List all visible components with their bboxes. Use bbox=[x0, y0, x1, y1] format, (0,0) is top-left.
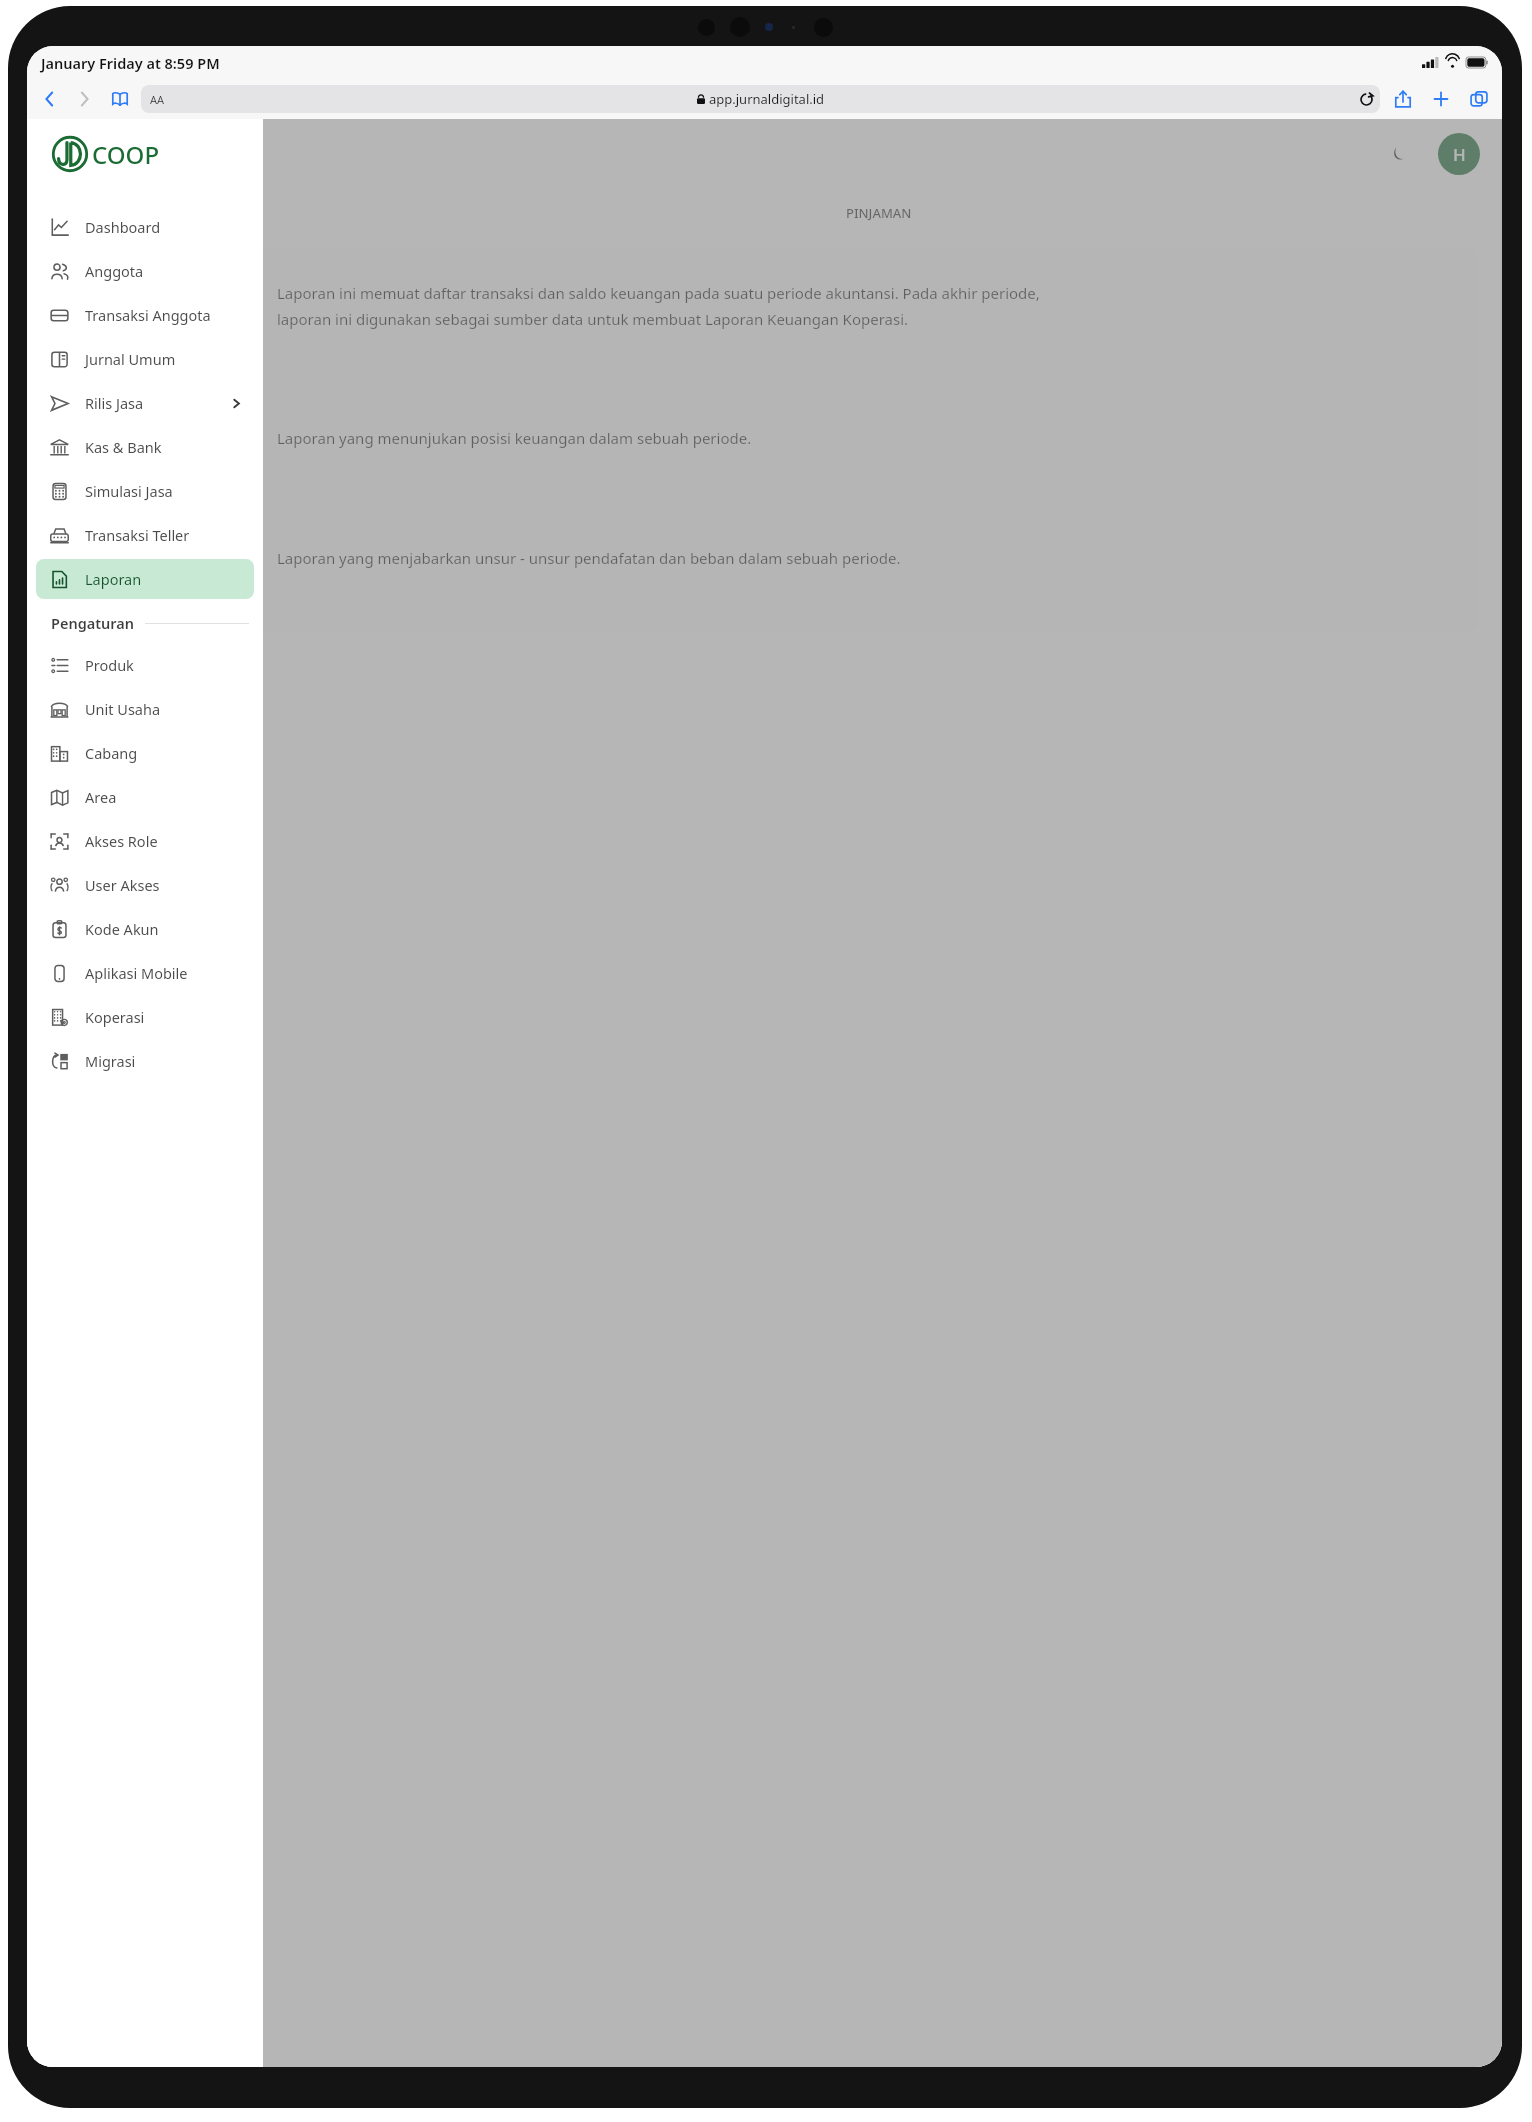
staticText: app.jurnaldigital.id bbox=[709, 90, 825, 108]
staticText: Koperasi bbox=[85, 1007, 145, 1027]
staticText: Laporan ini memuat daftar transaksi dan … bbox=[277, 283, 1040, 303]
button[interactable]: AA bbox=[141, 85, 1380, 113]
button[interactable]: Transaksi Teller bbox=[36, 515, 254, 555]
button[interactable]: Aplikasi Mobile bbox=[36, 953, 254, 993]
button[interactable]: Cabang bbox=[36, 733, 254, 773]
button[interactable]: Simulasi Jasa bbox=[36, 471, 254, 511]
staticText: Anggota bbox=[85, 261, 144, 281]
staticText: Transaksi Anggota bbox=[85, 305, 211, 325]
staticText: PINJAMAN bbox=[846, 204, 912, 222]
staticText: Rilis Jasa bbox=[85, 393, 144, 413]
button[interactable]: Share bbox=[1390, 86, 1416, 112]
button[interactable]: Dark mode bbox=[1382, 137, 1416, 171]
button[interactable]: Akses Role bbox=[36, 821, 254, 861]
button[interactable]: PINJAMAN bbox=[255, 189, 1502, 239]
staticText: Jurnal Umum bbox=[85, 349, 176, 369]
staticText: Laporan yang menjabarkan unsur - unsur p… bbox=[277, 548, 901, 568]
button[interactable]: Reload bbox=[1356, 89, 1376, 109]
staticText: January Friday at 8:59 PM bbox=[41, 53, 220, 73]
staticText: User Akses bbox=[85, 875, 160, 895]
staticText: Dashboard bbox=[85, 217, 161, 237]
staticText: AA bbox=[150, 92, 165, 107]
button[interactable]: Jurnal Umum bbox=[36, 339, 254, 379]
button[interactable]: User Akses bbox=[36, 865, 254, 905]
button[interactable]: Kode Akun bbox=[36, 909, 254, 949]
staticText: Area bbox=[85, 787, 117, 807]
button[interactable]: Tabs bbox=[1466, 86, 1492, 112]
staticText: Akses Role bbox=[85, 831, 158, 851]
staticText: Cabang bbox=[85, 743, 138, 763]
button[interactable]: Koperasi bbox=[36, 997, 254, 1037]
staticText: Produk bbox=[85, 655, 134, 675]
button[interactable]: Bookmarks bbox=[107, 86, 133, 112]
button[interactable]: Anggota bbox=[36, 251, 254, 291]
staticText: Aplikasi Mobile bbox=[85, 963, 188, 983]
staticText: COOP bbox=[92, 138, 160, 171]
staticText: Unit Usaha bbox=[85, 699, 161, 719]
button[interactable]: New tab bbox=[1428, 86, 1454, 112]
button[interactable]: Area bbox=[36, 777, 254, 817]
staticText: Migrasi bbox=[85, 1051, 136, 1071]
staticText: Simulasi Jasa bbox=[85, 481, 173, 501]
button[interactable]: Laporan bbox=[36, 559, 254, 599]
button[interactable]: Rilis Jasa bbox=[36, 383, 254, 423]
staticText: laporan ini digunakan sebagai sumber dat… bbox=[277, 309, 909, 329]
button[interactable]: Migrasi bbox=[36, 1041, 254, 1081]
button[interactable]: Forward bbox=[71, 86, 97, 112]
staticText: Laporan bbox=[85, 569, 142, 589]
button[interactable]: Transaksi Anggota bbox=[36, 295, 254, 335]
button[interactable]: Back bbox=[37, 86, 63, 112]
button[interactable]: Produk bbox=[36, 645, 254, 685]
button[interactable]: Unit Usaha bbox=[36, 689, 254, 729]
button[interactable]: Kas & Bank bbox=[36, 427, 254, 467]
staticText: H bbox=[1453, 143, 1466, 166]
button[interactable]: H bbox=[1438, 133, 1480, 175]
staticText: Pengaturan bbox=[51, 613, 135, 633]
button[interactable]: Dashboard bbox=[36, 207, 254, 247]
staticText: Laporan yang menunjukan posisi keuangan … bbox=[277, 428, 752, 448]
staticText: Kas & Bank bbox=[85, 437, 162, 457]
staticText: Transaksi Teller bbox=[85, 525, 190, 545]
staticText: Kode Akun bbox=[85, 919, 159, 939]
